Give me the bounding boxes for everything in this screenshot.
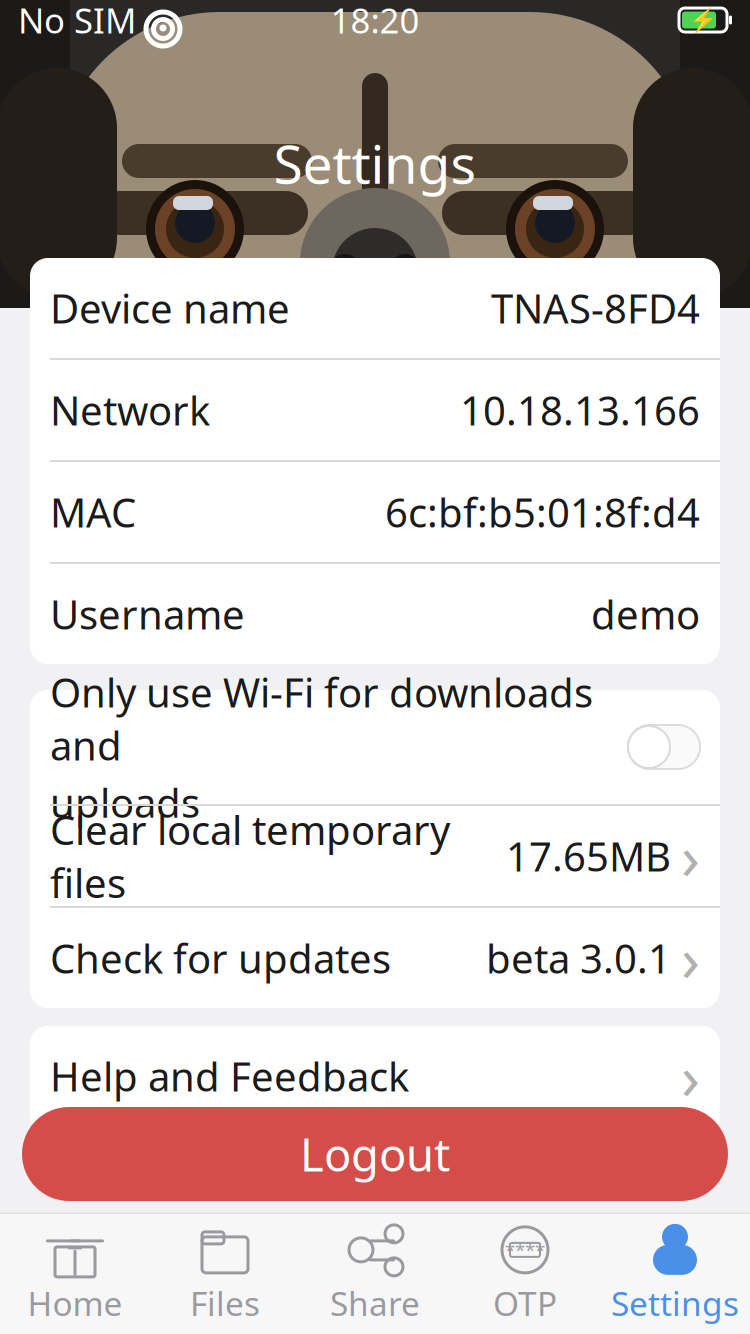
staticText: TNAS-8FD4 xyxy=(491,281,700,334)
button[interactable]: Clear local temporary files xyxy=(30,806,720,906)
button[interactable]: Only use Wi-Fi for downloads and uploads xyxy=(628,725,700,769)
staticText: Device name xyxy=(50,281,290,334)
staticText: Settings xyxy=(611,1281,739,1325)
button[interactable]: Files xyxy=(150,1214,300,1334)
staticText: › xyxy=(681,1035,700,1117)
staticText: Share xyxy=(330,1281,420,1325)
staticText: uploads xyxy=(50,776,200,829)
button[interactable]: Settings xyxy=(600,1214,750,1334)
staticText: 18:20 xyxy=(330,0,419,43)
staticText: › xyxy=(681,815,700,897)
staticText: 6c:bf:b5:01:8f:d4 xyxy=(385,485,700,538)
staticText: Files xyxy=(190,1281,260,1325)
staticText: No SIM xyxy=(18,0,136,43)
staticText: 10.18.13.166 xyxy=(460,383,700,436)
staticText: Clear local temporary files xyxy=(50,803,450,909)
staticText: › xyxy=(681,917,700,999)
staticText: beta 3.0.1 xyxy=(486,931,671,984)
staticText: Network xyxy=(50,383,210,436)
button[interactable]: Help and Feedback xyxy=(30,1026,720,1126)
button[interactable]: **** xyxy=(450,1214,600,1334)
staticText: **** xyxy=(505,1237,545,1262)
staticText: Settings xyxy=(273,128,476,198)
staticText: MAC xyxy=(50,485,136,538)
staticText: demo xyxy=(591,587,700,640)
staticText: OTP xyxy=(493,1281,557,1325)
staticText: Logout xyxy=(300,1124,450,1184)
staticText: 17.65MB xyxy=(506,829,671,882)
staticText: Only use Wi-Fi for downloads and xyxy=(50,665,593,771)
button[interactable]: Share xyxy=(300,1214,450,1334)
staticText: Check for updates xyxy=(50,931,391,984)
button[interactable]: Check for updates xyxy=(30,908,720,1008)
staticText: Home xyxy=(27,1281,122,1325)
staticText: Username xyxy=(50,587,245,640)
staticText: ⚡ xyxy=(689,7,717,33)
button[interactable]: Home xyxy=(0,1214,150,1334)
button[interactable]: Logout xyxy=(22,1107,728,1201)
staticText: Help and Feedback xyxy=(50,1049,409,1102)
